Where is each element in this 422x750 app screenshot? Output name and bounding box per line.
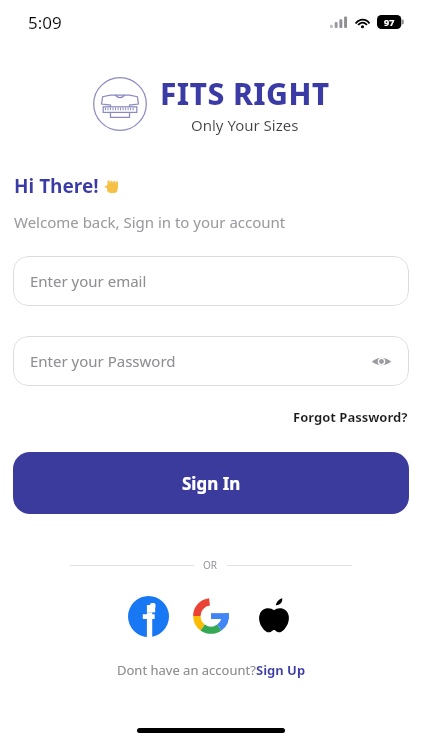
button[interactable]: Enter your email — [13, 256, 409, 306]
staticText: 5:09 — [28, 11, 62, 34]
staticText: Dont have an account? — [117, 661, 256, 679]
staticText: Only Your Sizes — [191, 115, 299, 135]
button[interactable]: Sign in with Facebook — [125, 593, 171, 639]
button[interactable]: Forgot Password? — [293, 408, 408, 426]
staticText: Enter your Password — [30, 351, 176, 371]
button[interactable]: Sign Up — [256, 661, 306, 679]
staticText: OR — [203, 558, 218, 572]
staticText: Sign In — [182, 472, 241, 495]
button[interactable]: Enter your Password — [13, 336, 409, 386]
button[interactable]: Sign in with Apple — [251, 593, 297, 639]
staticText: 97 — [384, 16, 395, 28]
button[interactable]: Show password — [366, 346, 396, 376]
button[interactable]: Sign in with Google — [188, 593, 234, 639]
staticText: Forgot Password? — [293, 408, 408, 426]
staticText: Hi There! — [14, 173, 99, 199]
staticText: Sign Up — [256, 661, 306, 679]
staticText: Welcome back, Sign in to your account — [14, 212, 286, 232]
staticText: Enter your email — [30, 271, 147, 291]
button[interactable]: Sign In — [13, 452, 409, 514]
staticText: FITS RIGHT — [160, 73, 330, 114]
